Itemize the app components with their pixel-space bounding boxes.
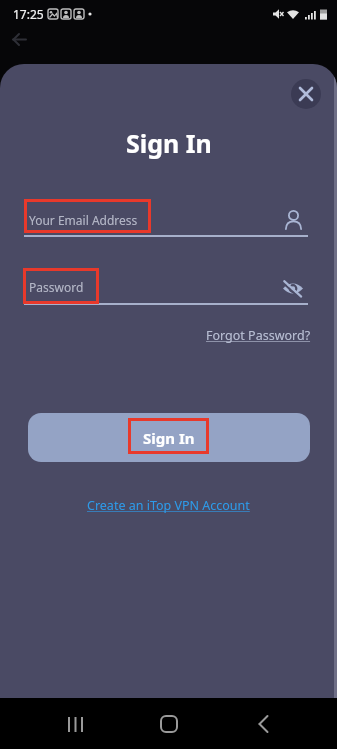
- staticText: Sign In: [126, 126, 212, 160]
- staticText: Sign In: [143, 428, 195, 448]
- button[interactable]: Sign In: [28, 413, 310, 462]
- staticText: Create an iTop VPN Account: [87, 497, 250, 514]
- staticText: Your Email Address: [29, 212, 138, 228]
- staticText: Password: [29, 279, 84, 295]
- button[interactable]: [145, 700, 193, 748]
- button[interactable]: [24, 268, 308, 305]
- staticText: 17:25: [13, 6, 44, 22]
- button[interactable]: Forgot Password?: [206, 327, 311, 344]
- button[interactable]: [291, 79, 321, 109]
- button[interactable]: Create an iTop VPN Account: [87, 497, 250, 514]
- button[interactable]: [51, 700, 99, 748]
- button[interactable]: [24, 199, 308, 237]
- button[interactable]: [239, 700, 287, 748]
- staticText: Forgot Password?: [206, 327, 311, 344]
